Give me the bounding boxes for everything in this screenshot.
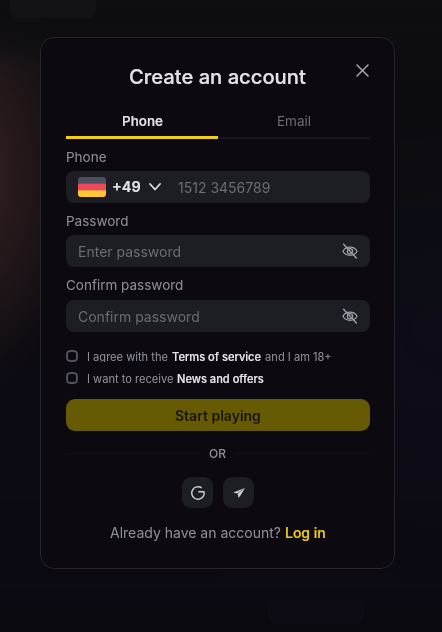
button[interactable]: Start playing — [66, 399, 370, 431]
staticText: I agree with the — [87, 350, 172, 362]
staticText: 1512 3456789 — [178, 179, 271, 196]
button[interactable]: Sign in with Google — [182, 477, 213, 508]
staticText: Confirm password — [66, 277, 184, 293]
button[interactable]: Show password — [337, 303, 363, 329]
button[interactable]: Confirm password — [66, 300, 370, 332]
staticText: Email — [277, 113, 312, 129]
staticText: Create an account — [129, 64, 306, 88]
staticText: Log in — [285, 524, 326, 541]
button[interactable]: Email — [218, 113, 370, 139]
staticText: Start playing — [175, 407, 261, 424]
staticText: Terms of service — [172, 350, 262, 362]
button[interactable]: Show password — [337, 238, 363, 264]
staticText: Confirm password — [78, 308, 200, 325]
staticText: News and offers — [177, 372, 264, 384]
staticText: Enter password — [78, 243, 182, 260]
button[interactable]: I agree with the — [66, 350, 370, 362]
staticText: Password — [66, 213, 129, 229]
button[interactable]: Phone — [66, 113, 218, 139]
staticText: Phone — [66, 149, 107, 165]
button[interactable]: Enter password — [66, 235, 370, 267]
staticText: OR — [209, 446, 226, 461]
staticText: Phone — [122, 113, 163, 129]
button[interactable]: Log in — [285, 524, 326, 541]
button[interactable]: I want to receive — [66, 372, 370, 384]
staticText: +49 — [112, 178, 141, 196]
button[interactable]: +49 — [66, 171, 370, 203]
button[interactable]: Sign in with Telegram — [223, 477, 254, 508]
staticText: Already have an account? — [110, 524, 285, 541]
staticText: I want to receive — [87, 372, 177, 384]
staticText: and I am 18+ — [262, 350, 332, 362]
button[interactable]: Close — [348, 56, 376, 84]
